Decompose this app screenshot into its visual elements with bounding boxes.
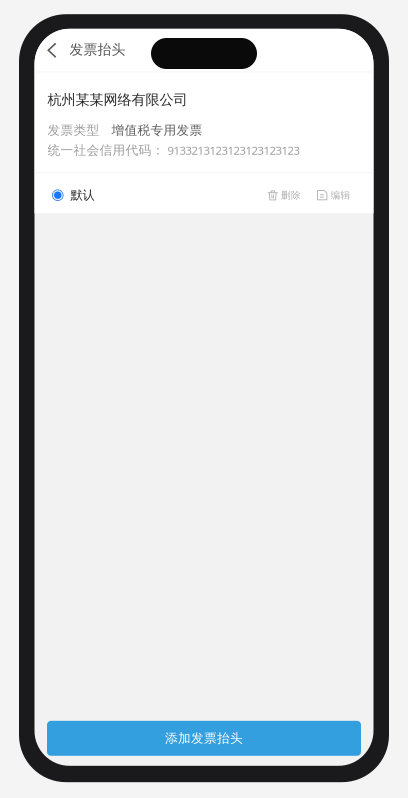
staticText: 删除 [281, 189, 301, 201]
staticText: 统一社会信用代码： [47, 142, 164, 158]
staticText: 9133213123123123123123 [167, 143, 299, 158]
staticText: 发票抬头 [69, 41, 125, 58]
staticText: 添加发票抬头 [165, 730, 243, 746]
staticText: 增值税专用发票 [111, 122, 202, 138]
staticText: 发票类型 [47, 122, 99, 138]
button[interactable]: 默认 [34, 177, 104, 213]
button[interactable]: 发票抬头 [34, 29, 137, 72]
staticText: 杭州某某网络有限公司 [47, 91, 187, 109]
staticText: 编辑 [330, 189, 350, 201]
button[interactable]: 添加发票抬头 [47, 721, 361, 756]
button[interactable]: 删除 [259, 177, 309, 213]
button[interactable]: 编辑 [309, 177, 373, 213]
staticText: 默认 [70, 187, 94, 203]
